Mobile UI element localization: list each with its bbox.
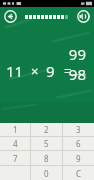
staticText: × [31, 62, 39, 80]
staticText: 1 [13, 124, 18, 135]
button[interactable]: 9 [63, 151, 94, 165]
staticText: 99 [68, 44, 86, 64]
button[interactable]: 2 [31, 123, 62, 136]
button[interactable]: 7 [0, 151, 30, 165]
staticText: 0 [44, 168, 49, 179]
button[interactable]: 6 [63, 137, 94, 150]
staticText: 11 [6, 61, 24, 81]
staticText: 9 [46, 61, 55, 81]
staticText: 6 [76, 138, 81, 149]
staticText: 9 [76, 153, 81, 164]
button[interactable]: C [63, 166, 94, 180]
staticText: 5 [44, 138, 49, 149]
staticText: 8 [44, 153, 49, 164]
button[interactable]: Sound [76, 9, 91, 24]
staticText: 7 [13, 153, 18, 164]
staticText: 2 [44, 124, 49, 135]
button[interactable]: 1 [0, 123, 30, 136]
button[interactable]: Back [3, 9, 18, 24]
staticText: = [64, 62, 72, 80]
staticText: C [76, 168, 82, 179]
button[interactable]: 3 [63, 123, 94, 136]
button[interactable]: 5 [31, 137, 62, 150]
staticText: 98 [68, 64, 86, 84]
staticText: 4 [13, 138, 18, 149]
button[interactable]: 0 [31, 166, 62, 180]
staticText: 3 [76, 124, 81, 135]
button[interactable]: 4 [0, 137, 30, 150]
button[interactable]: 8 [31, 151, 62, 165]
